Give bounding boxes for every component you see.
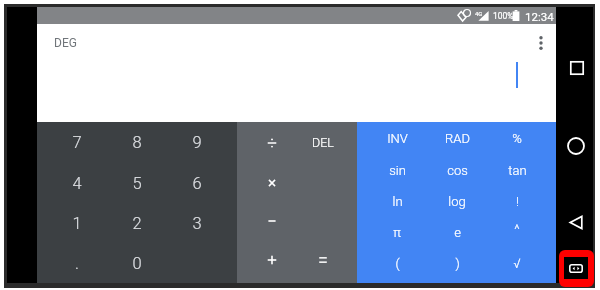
staticText: sin [389,163,406,178]
button[interactable]: ! [487,186,547,217]
staticText: 8 [132,133,142,152]
button[interactable] [246,203,297,243]
staticText: DEL [312,135,334,150]
button[interactable]: e [427,217,487,248]
button[interactable]: 5 [107,163,167,203]
button[interactable]: 1 [47,203,107,243]
staticText: 4G [475,10,483,17]
button[interactable]: . [47,243,107,283]
staticText: 2 [132,214,142,233]
button[interactable]: sin [367,154,427,186]
button[interactable]: INV [367,122,427,154]
staticText: √ [513,256,521,271]
staticText: INV [387,131,408,146]
button[interactable]: √ [487,248,547,279]
staticText: 0 [132,254,142,273]
staticText: 4 [72,174,82,193]
staticText: e [454,225,461,240]
button[interactable]: RAD [427,122,487,154]
staticText: . [75,254,79,273]
staticText: ) [455,256,460,271]
staticText: 3 [192,214,202,233]
staticText: π [393,225,401,240]
button[interactable]: Rotate screen [559,250,594,287]
staticText: ! [516,194,519,209]
button[interactable]: π [367,217,427,248]
button[interactable]: 3 [167,203,227,243]
button[interactable]: 2 [107,203,167,243]
button[interactable]: log [427,186,487,217]
staticText: RAD [445,131,470,146]
button[interactable]: 6 [167,163,227,203]
button[interactable]: DEL [297,122,348,163]
staticText: 5 [132,174,142,193]
staticText: tan [508,163,527,178]
staticText: cos [447,163,468,178]
button[interactable]: ( [367,248,427,279]
staticText: 100% [493,11,514,21]
button[interactable] [297,243,348,283]
button[interactable]: 4 [47,163,107,203]
staticText: % [512,131,522,146]
staticText: 6 [192,174,202,193]
button[interactable]: 0 [107,243,167,283]
staticText: 1 [72,214,82,233]
button[interactable]: cos [427,154,487,186]
button[interactable]: Recent apps [564,55,589,80]
button[interactable]: DEG [54,36,77,50]
button[interactable] [246,122,297,163]
button[interactable]: More options [527,29,555,57]
staticText: ( [395,256,400,271]
button[interactable] [246,163,297,203]
staticText: ^ [514,222,520,237]
staticText: ln [392,194,403,209]
button[interactable]: ) [427,248,487,279]
button[interactable]: ^ [487,217,547,248]
staticText: 9 [192,133,202,152]
button[interactable] [246,243,297,283]
button[interactable]: tan [487,154,547,186]
button[interactable]: 9 [167,122,227,163]
button[interactable]: % [487,122,547,154]
staticText: 12:34 [525,10,554,23]
staticText: log [448,194,466,209]
button[interactable]: Back [563,210,588,235]
staticText: 7 [72,133,82,152]
button[interactable]: 7 [47,122,107,163]
button[interactable]: 8 [107,122,167,163]
button[interactable]: ln [367,186,427,217]
button[interactable]: Home [563,133,588,158]
